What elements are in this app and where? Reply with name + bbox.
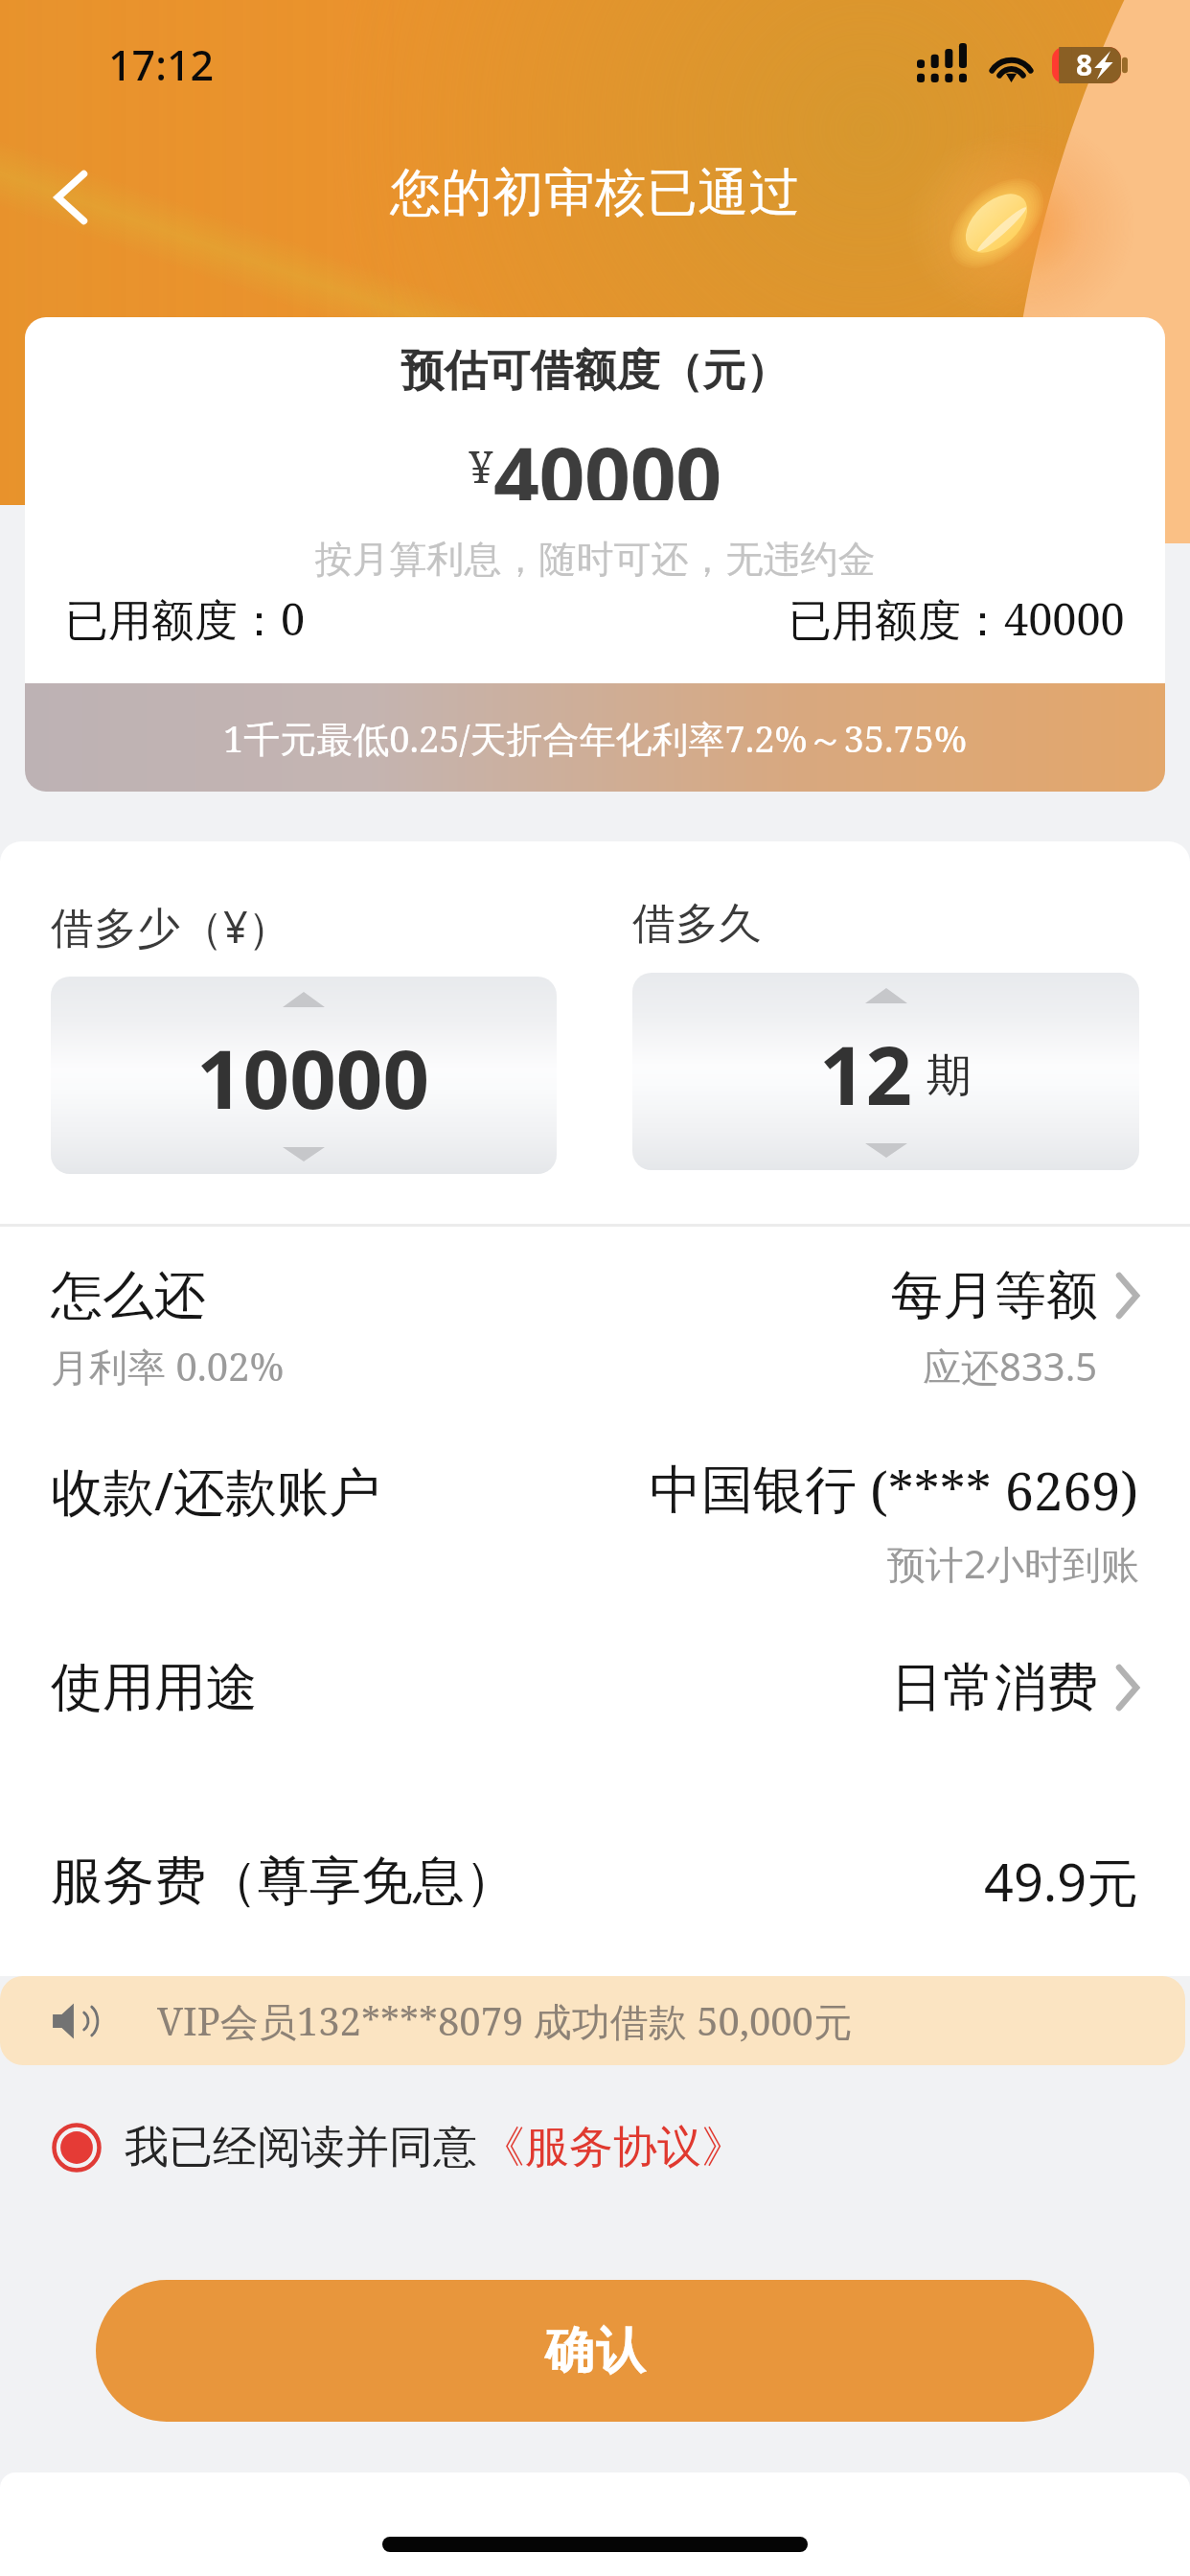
button[interactable]: 怎么还 <box>0 1263 1190 1392</box>
staticText: 49.9元 <box>984 1846 1139 1917</box>
staticText: 期 <box>927 1047 972 1104</box>
button[interactable]: 使用用途 <box>0 1655 1190 1720</box>
staticText: 服务费（尊享免息） <box>51 1849 516 1914</box>
staticText: 8 <box>1076 45 1093 84</box>
staticText: 借多少（¥） <box>51 897 291 955</box>
button[interactable]: 10000 <box>51 977 557 1174</box>
staticText: 您的初审核已通过 <box>390 161 800 225</box>
staticText: 我已经阅读并同意 <box>125 2120 477 2175</box>
button[interactable]: 我已经阅读并同意 <box>52 2108 1190 2187</box>
staticText: 每月等额 <box>891 1263 1098 1328</box>
button[interactable]: 12 <box>632 973 1139 1170</box>
staticText: 借多久 <box>632 897 762 952</box>
button[interactable]: 确认 <box>96 2280 1094 2422</box>
staticText: 10000 <box>196 1022 430 1133</box>
staticText: 1千元最低0.25/天折合年化利率7.2%～35.75% <box>223 713 967 763</box>
button[interactable]: VIP会员132****8079 成功借款 50,000元 <box>0 1976 1185 2065</box>
staticText: 已用额度：0 <box>65 589 306 648</box>
staticText: 17:12 <box>108 36 215 93</box>
staticText: 收款/还款账户 <box>51 1455 381 1526</box>
staticText: (**** 6269) <box>857 1455 1139 1526</box>
staticText: 日常消费 <box>891 1655 1098 1720</box>
staticText: 中国银行 <box>650 1458 857 1523</box>
staticText: 确认 <box>544 2320 646 2381</box>
button[interactable]: Back <box>31 157 111 238</box>
staticText: 预计2小时到账 <box>887 1537 1139 1590</box>
staticText: ¥ <box>469 436 493 496</box>
staticText: 已用额度：40000 <box>789 589 1125 648</box>
staticText: 《服务协议》 <box>481 2120 745 2175</box>
staticText: 预估可借额度（元） <box>25 344 1165 399</box>
staticText: 使用用途 <box>51 1655 258 1720</box>
staticText: 怎么还 <box>51 1263 206 1328</box>
button[interactable]: 收款/还款账户 <box>0 1455 1190 1590</box>
staticText: VIP会员132****8079 成功借款 50,000元 <box>157 1994 852 2047</box>
staticText: 按月算利息，随时可还，无违约金 <box>25 536 1165 583</box>
staticText: 40000 <box>493 420 721 500</box>
staticText: 12 <box>819 1018 913 1129</box>
staticText: 应还833.5 <box>923 1340 1098 1392</box>
staticText: 月利率 0.02% <box>51 1340 285 1392</box>
button[interactable]: 服务费（尊享免息） <box>0 1845 1190 1918</box>
